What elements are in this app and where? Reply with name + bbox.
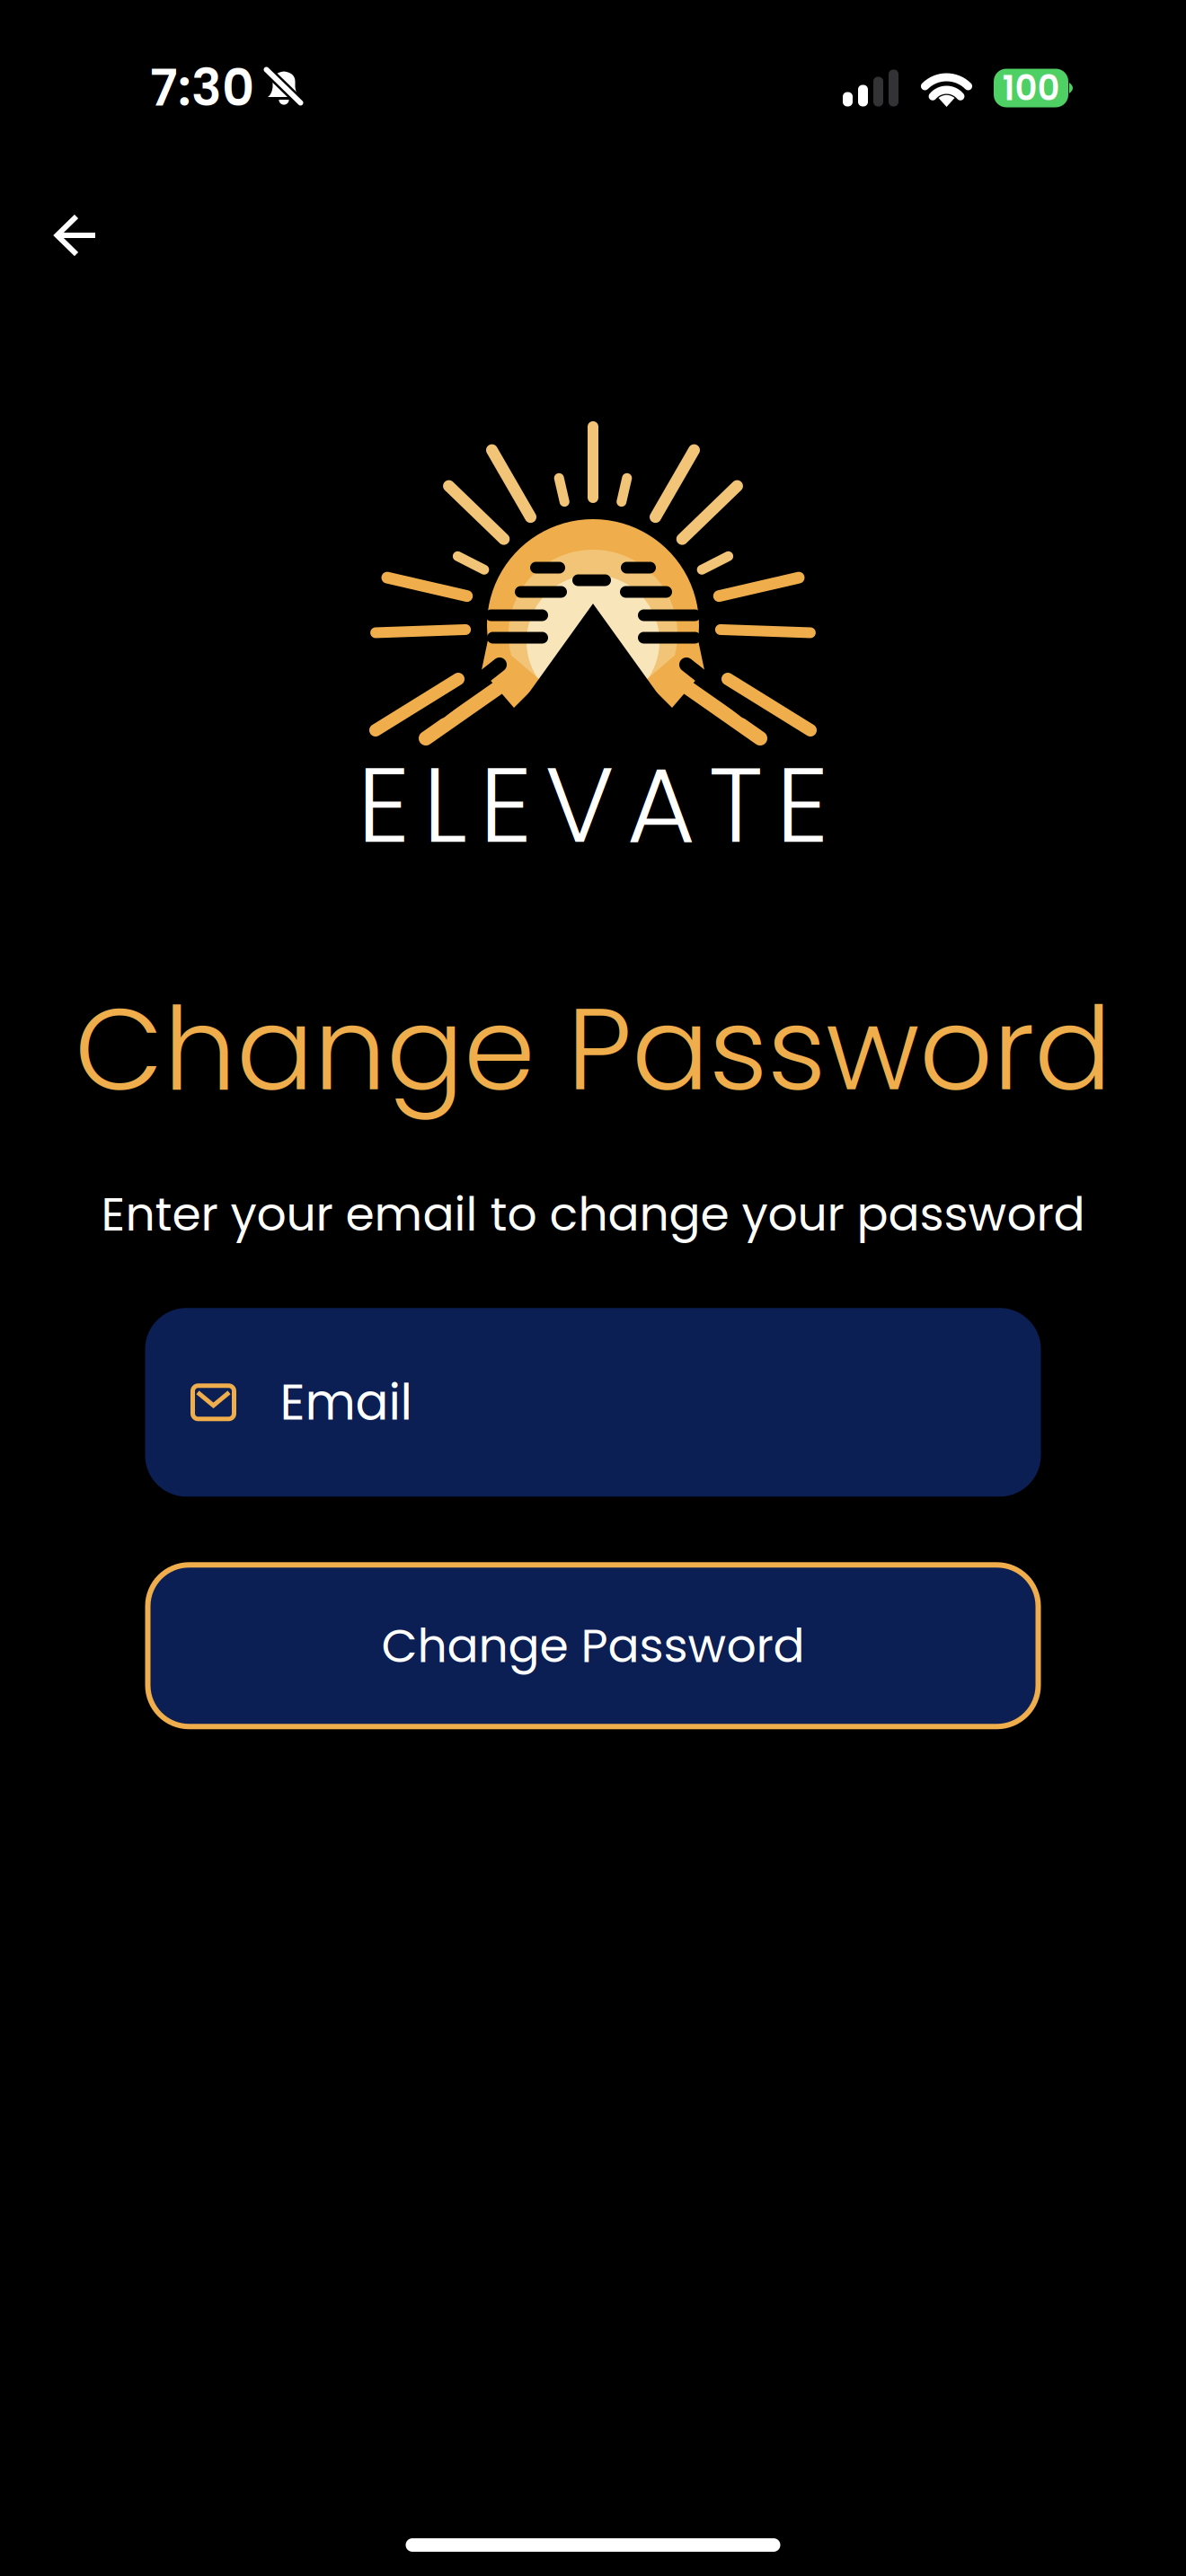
staticText: Email bbox=[280, 1368, 412, 1437]
staticText: Change Password bbox=[75, 969, 1111, 1129]
staticText: Change Password bbox=[381, 1613, 805, 1678]
button[interactable]: Back bbox=[54, 214, 99, 258]
staticText: 7:30 bbox=[150, 53, 254, 123]
button[interactable]: Change Password bbox=[148, 1565, 1038, 1727]
staticText: Enter your email to change your password bbox=[101, 1182, 1085, 1247]
staticText: 100 bbox=[1002, 64, 1060, 112]
staticText: E L E V A T E bbox=[357, 731, 829, 879]
